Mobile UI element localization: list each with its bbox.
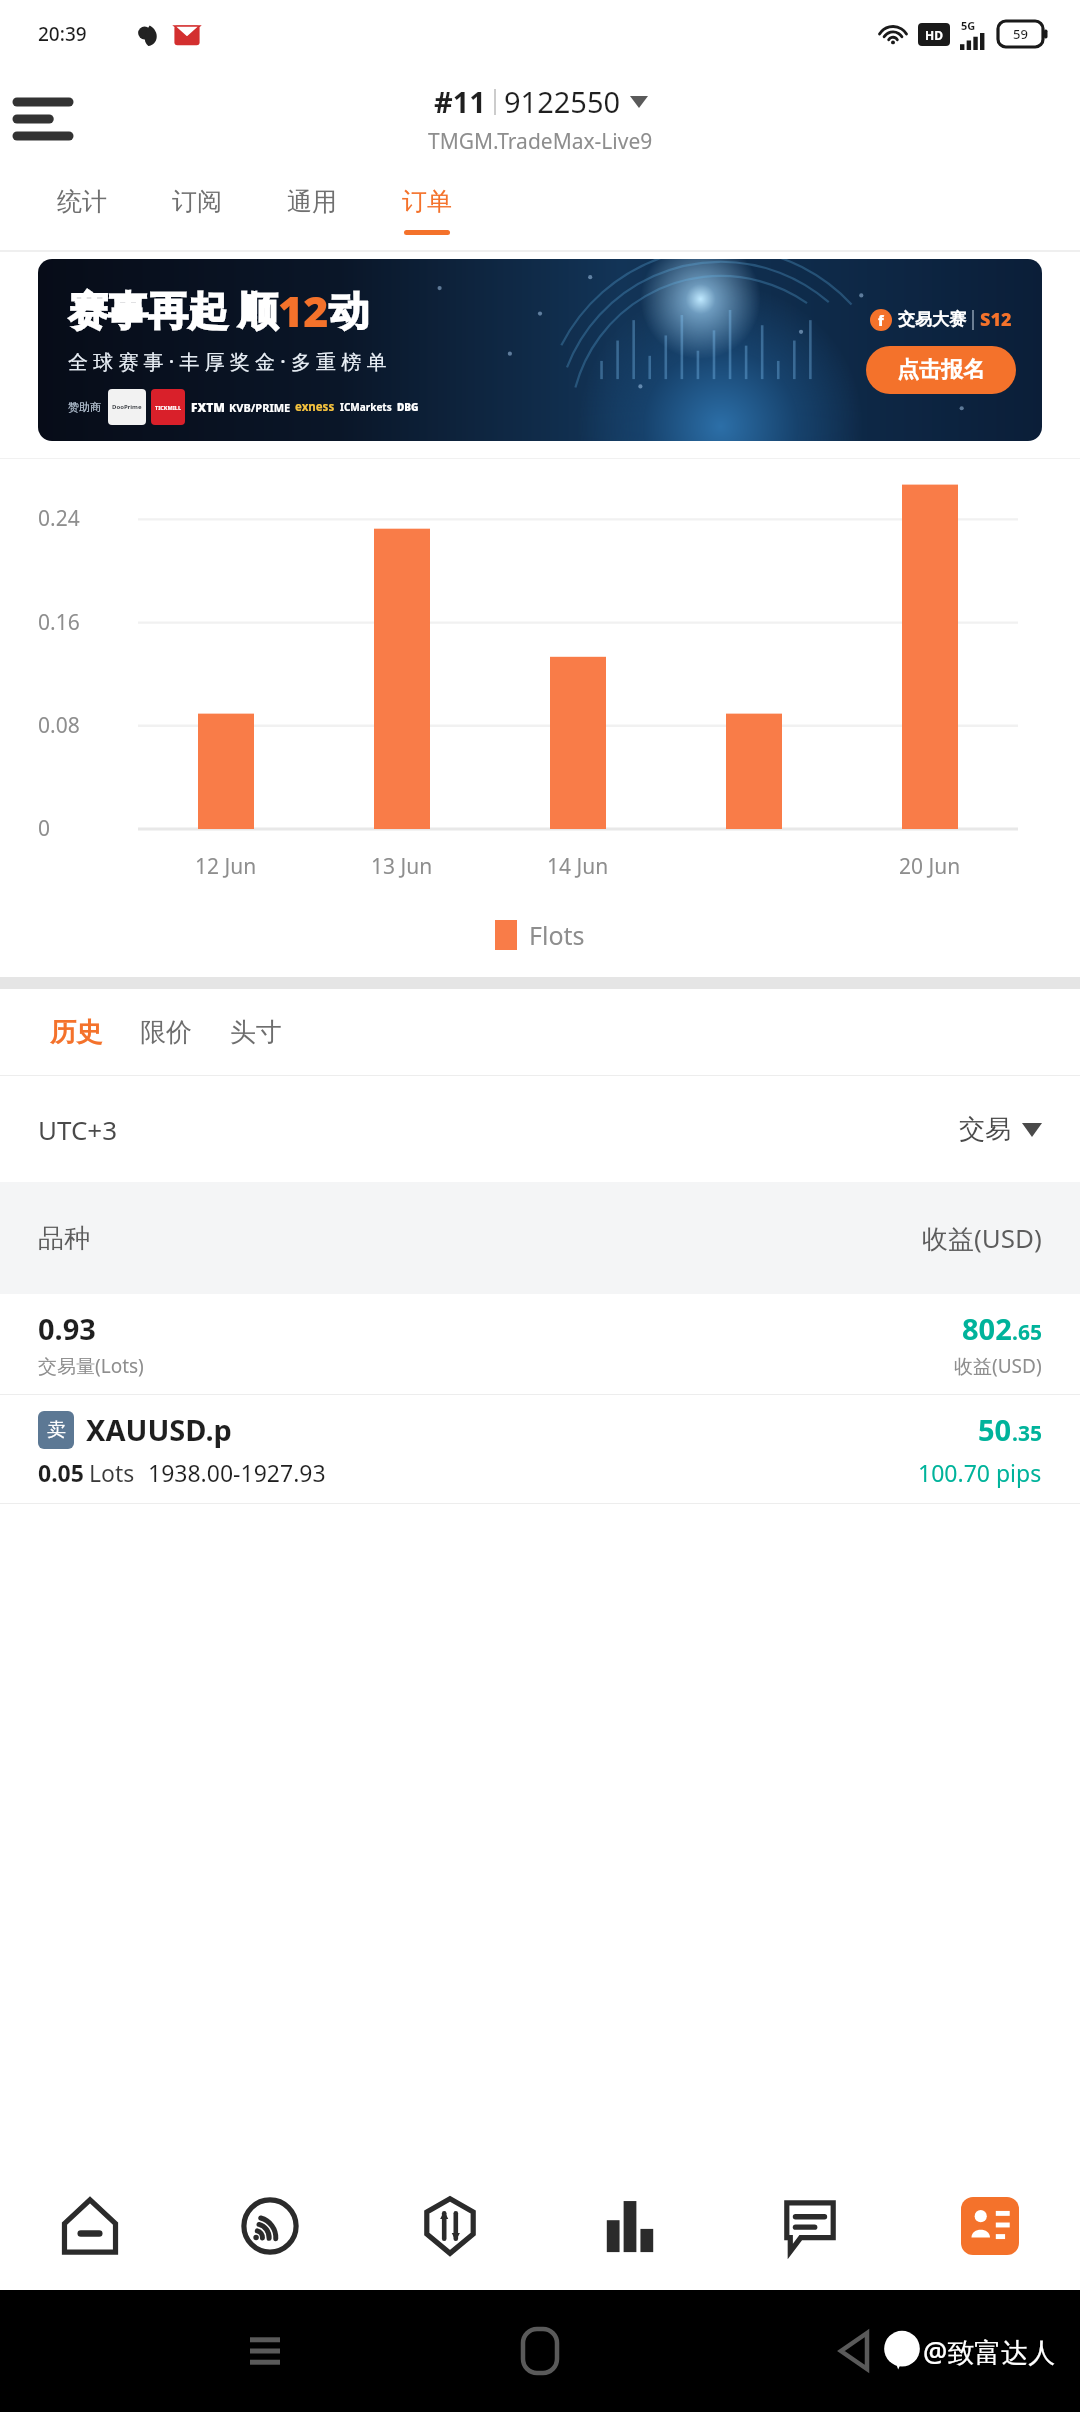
staticText: 9122550 [504,82,621,121]
staticText: HD [925,27,943,43]
staticText: 全 球 赛 事 · 丰 厚 奖 金 · 多 重 榜 单 [68,348,387,375]
button[interactable]: 统计 [24,168,139,252]
other: Back [841,2333,867,2369]
staticText: @致富达人 [923,2333,1056,2370]
staticText: 限价 [140,1016,192,1049]
staticText: 1938.00-1927.93 [148,1457,326,1488]
button[interactable]: 订单 [369,168,484,252]
staticText: 统计 [57,186,107,217]
other: Home [523,2329,557,2373]
button[interactable]: Chat [720,2162,900,2290]
button[interactable]: Menu [0,76,86,162]
button[interactable]: Quotes [0,2162,180,2290]
staticText: DooPrime [112,403,142,411]
staticText: 点击报名 [897,356,985,384]
staticText: Flots [529,918,585,952]
button[interactable]: 历史 [36,1000,116,1065]
staticText: 品种 [38,1222,90,1255]
staticText: Lots [89,1457,135,1488]
staticText: 0.08 [38,711,80,740]
staticText: 0 [38,814,51,843]
staticText: 交易量(Lots) [38,1353,144,1379]
staticText: 通用 [287,186,337,217]
button[interactable]: Signals [180,2162,360,2290]
button[interactable]: 点击报名 [866,346,1016,394]
staticText: ICMarkets [340,400,392,414]
button[interactable]: 赛事再起 [38,259,1042,441]
staticText: UTC+3 [38,1112,118,1147]
staticText: 0.05 [38,1457,84,1488]
staticText: 20:39 [38,21,87,47]
staticText: DBG [397,400,419,414]
staticText: .35 [1012,1419,1042,1448]
button[interactable]: Trade [360,2162,540,2290]
staticText: 动 [329,286,369,336]
staticText: 12 Jun [195,852,257,881]
staticText: XAUUSD.p [86,1410,232,1449]
button[interactable]: 卖 [0,1395,1080,1503]
staticText: 0.16 [38,608,80,637]
staticText: FXTM [191,399,225,415]
button[interactable]: 订阅 [139,168,254,252]
staticText: f [878,311,884,330]
button[interactable]: 头寸 [216,1000,296,1065]
button[interactable]: 通用 [254,168,369,252]
staticText: 交易大赛 [898,309,966,330]
staticText: 100.70 pips [918,1457,1042,1488]
staticText: 14 Jun [547,852,609,881]
staticText: 0.24 [38,504,80,533]
staticText: 802 [962,1309,1012,1348]
staticText: .65 [1012,1318,1042,1347]
staticText: 0.93 [38,1309,96,1348]
staticText: S12 [980,307,1012,332]
staticText: #11 [434,82,486,121]
staticText: 头寸 [230,1016,282,1049]
staticText: 20 Jun [899,852,961,881]
staticText: 收益(USD) [922,1220,1042,1256]
staticText: 历史 [50,1016,102,1049]
staticText: 交易 [959,1113,1011,1146]
staticText: KVB/PRIME [229,400,291,415]
staticText: 5G [961,18,976,33]
staticText: 赞助商 [68,400,101,414]
button[interactable]: #11 [428,82,653,156]
staticText: 订单 [402,186,452,217]
staticText: 收益(USD) [954,1353,1042,1379]
staticText: TICKMILL [155,404,181,411]
staticText: 13 Jun [371,852,433,881]
staticText: 赛事再起 [68,286,228,336]
staticText: 12 [278,281,329,340]
staticText: exness [295,399,335,415]
staticText: 卖 [47,1418,66,1442]
staticText: TMGM.TradeMax-Live9 [428,127,653,156]
button[interactable]: 限价 [126,1000,206,1065]
staticText: 订阅 [172,186,222,217]
staticText: 59 [1013,25,1028,43]
other: Recents [250,2334,280,2368]
button[interactable]: History [540,2162,720,2290]
staticText: 顺 [238,286,278,336]
button[interactable]: Profile [900,2162,1080,2290]
staticText: 50 [978,1410,1012,1449]
button[interactable]: 交易 [959,1113,1042,1146]
